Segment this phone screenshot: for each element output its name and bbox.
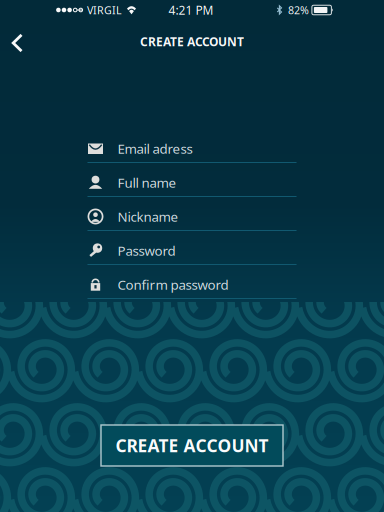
staticText: CREATE ACCOUNT [115,434,268,457]
button[interactable]: Confirm password [87,271,296,299]
staticText: Password [117,242,175,259]
button[interactable]: Back [0,20,38,55]
button[interactable]: Nickname [87,203,296,231]
button[interactable]: Full name [87,169,296,197]
staticText: Email adress [117,140,192,157]
staticText: CREATE ACCOUNT [140,33,244,49]
button[interactable]: Email adress [87,135,296,163]
staticText: VIRGIL [87,3,122,17]
button[interactable]: CREATE ACCOUNT [101,425,283,466]
staticText: Full name [117,174,176,191]
staticText: Confirm password [117,276,228,293]
staticText: 82% [288,3,309,17]
staticText: 4:21 PM [168,2,213,18]
staticText: Nickname [117,208,178,225]
button[interactable]: Password [87,237,296,265]
